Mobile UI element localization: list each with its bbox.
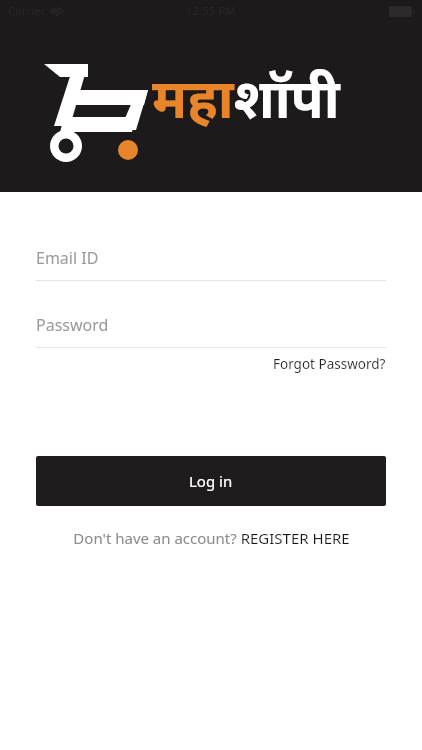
- button[interactable]: Password: [36, 312, 386, 348]
- staticText: Don't have an account? REGISTER HERE: [73, 528, 350, 548]
- staticText: Log in: [189, 471, 233, 491]
- staticText: Email ID: [36, 247, 99, 269]
- staticText: 12:55 PM: [186, 3, 236, 19]
- button[interactable]: Don't have an account? REGISTER HERE: [65, 525, 358, 551]
- staticText: Forgot Password?: [273, 355, 386, 373]
- button[interactable]: Log in: [36, 456, 386, 506]
- button[interactable]: Email ID: [36, 245, 386, 281]
- staticText: Password: [36, 314, 109, 336]
- button[interactable]: Forgot Password?: [36, 355, 386, 373]
- staticText: महाशॉपी: [152, 60, 340, 134]
- staticText: Carrier: [8, 3, 46, 19]
